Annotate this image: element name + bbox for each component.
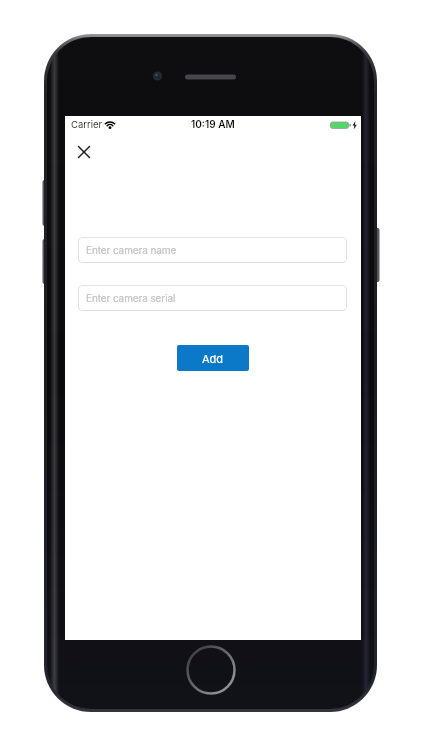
button[interactable]: Enter camera serial	[78, 285, 347, 311]
staticText: Enter camera name	[86, 244, 177, 256]
button[interactable]	[74, 142, 94, 162]
staticText: Carrier	[71, 119, 103, 130]
button[interactable]: Add	[177, 345, 249, 371]
staticText: Enter camera serial	[86, 292, 176, 304]
button[interactable]: Enter camera name	[78, 237, 347, 263]
staticText: 10:19 AM	[191, 118, 235, 130]
staticText: Add	[202, 352, 224, 365]
